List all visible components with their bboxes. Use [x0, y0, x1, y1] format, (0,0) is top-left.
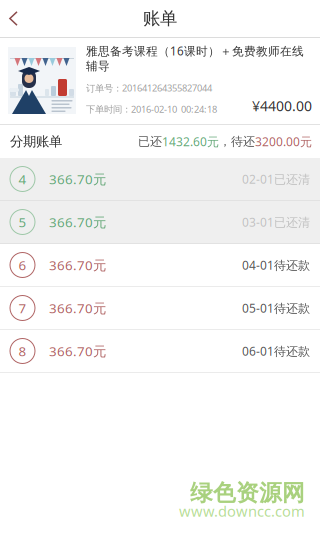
staticText: 1432.60元: [162, 133, 219, 150]
staticText: 366.70元: [49, 213, 106, 231]
staticText: www.downcc.com: [179, 501, 305, 521]
staticText: 7: [18, 299, 26, 317]
staticText: 已还: [138, 134, 162, 149]
staticText: 366.70元: [49, 342, 106, 360]
staticText: 6: [18, 256, 26, 274]
staticText: 4: [18, 170, 26, 188]
staticText: 366.70元: [49, 256, 106, 274]
button[interactable]: Back: [0, 0, 44, 37]
button[interactable]: 8: [0, 330, 320, 372]
staticText: 05-01待还款: [242, 300, 310, 316]
button[interactable]: 4: [0, 158, 320, 200]
staticText: 5: [18, 213, 26, 231]
staticText: 06-01待还款: [242, 343, 310, 359]
staticText: 04-01待还款: [242, 257, 310, 273]
staticText: 3200.00元: [255, 133, 312, 150]
staticText: 02-01已还清: [242, 171, 310, 187]
staticText: 03-01已还清: [242, 214, 310, 230]
staticText: 绿色资源网: [190, 479, 305, 507]
staticText: ¥4400.00: [252, 96, 312, 115]
staticText: 雅思备考课程（16课时）＋免费教师在线辅导: [86, 43, 304, 74]
button[interactable]: 6: [0, 244, 320, 286]
staticText: ，待还: [219, 134, 255, 149]
staticText: 账单: [143, 8, 177, 29]
staticText: 366.70元: [49, 170, 106, 188]
button[interactable]: 7: [0, 287, 320, 329]
button[interactable]: 5: [0, 201, 320, 243]
staticText: 分期账单: [10, 133, 62, 150]
staticText: 366.70元: [49, 299, 106, 317]
staticText: 下单时间：2016-02-10 00:24:18: [86, 103, 217, 115]
staticText: 订单号：201641264355827044: [86, 82, 212, 94]
staticText: 8: [18, 342, 26, 360]
